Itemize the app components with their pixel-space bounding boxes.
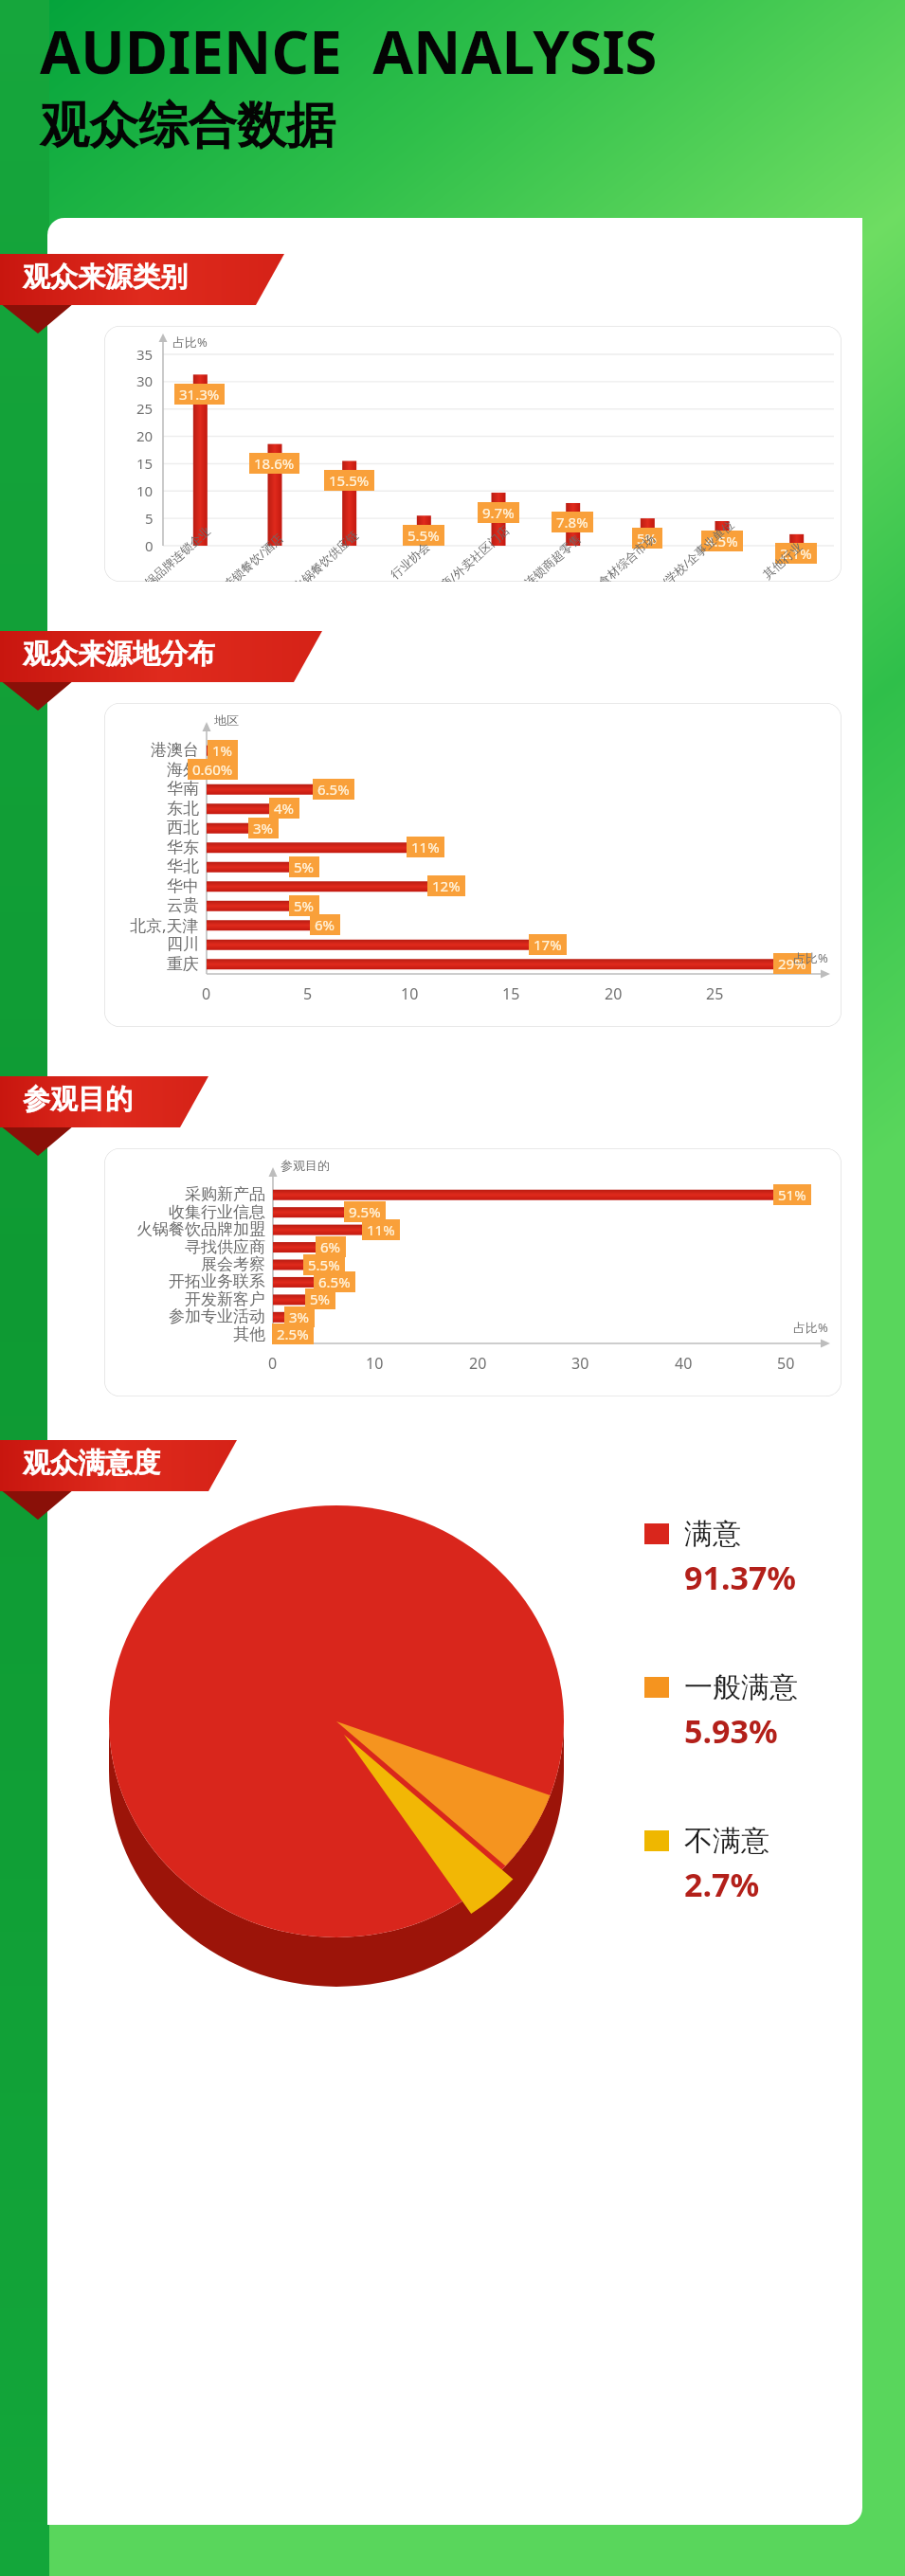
- staticText: 51%: [778, 1185, 806, 1204]
- staticText: 6.5%: [318, 1272, 351, 1291]
- staticText: 5%: [310, 1289, 331, 1308]
- button[interactable]: 0: [104, 326, 842, 582]
- staticText: 火锅品牌连锁企业: [133, 524, 214, 582]
- staticText: 17%: [534, 935, 562, 954]
- staticText: 2.7%: [684, 1863, 760, 1906]
- staticText: 20: [469, 1353, 487, 1374]
- staticText: 采购新产品: [185, 1184, 265, 1204]
- staticText: 不满意: [684, 1823, 769, 1859]
- button[interactable]: 观众来源地分布: [0, 631, 842, 690]
- staticText: 参观目的: [23, 1082, 133, 1117]
- staticText: 7.8%: [556, 513, 588, 531]
- staticText: 25: [136, 399, 154, 418]
- staticText: 占比%: [793, 1319, 828, 1336]
- staticText: AUDIENCE ANALYSIS: [40, 11, 658, 91]
- staticText: 2.5%: [277, 1324, 309, 1343]
- button[interactable]: 采购新产品: [104, 1148, 842, 1396]
- staticText: 29%: [778, 954, 806, 973]
- staticText: 3%: [253, 819, 274, 838]
- staticText: 观众来源类别: [23, 260, 188, 295]
- staticText: 0.60%: [192, 760, 233, 779]
- staticText: 东北: [167, 799, 199, 819]
- staticText: 15: [136, 454, 154, 473]
- button[interactable]: 一般满意: [644, 1669, 798, 1753]
- staticText: 6.5%: [317, 780, 350, 799]
- staticText: 2.1%: [780, 544, 812, 563]
- staticText: 观众来源地分布: [23, 637, 215, 672]
- button[interactable]: 满意: [644, 1516, 797, 1599]
- staticText: 18.6%: [254, 454, 295, 473]
- staticText: 40: [675, 1353, 693, 1374]
- staticText: 寻找供应商: [185, 1237, 265, 1257]
- button[interactable]: 参观目的: [0, 1076, 842, 1135]
- staticText: 云贵: [167, 895, 199, 915]
- staticText: 参加专业活动: [169, 1306, 265, 1326]
- staticText: 北京,天津: [130, 914, 199, 936]
- staticText: 12%: [432, 876, 461, 895]
- staticText: 收集行业信息: [169, 1202, 265, 1222]
- staticText: 6%: [315, 915, 335, 934]
- staticText: 火锅餐饮供应链: [290, 527, 362, 582]
- button[interactable]: 不满意: [644, 1823, 769, 1906]
- staticText: 4%: [274, 799, 295, 818]
- staticText: 5.5%: [308, 1255, 340, 1274]
- button[interactable]: 港澳台: [104, 703, 842, 1027]
- staticText: 0: [268, 1353, 278, 1374]
- staticText: 行业协会: [388, 539, 433, 582]
- staticText: 满意: [684, 1516, 741, 1552]
- staticText: 参观目的: [281, 1158, 330, 1173]
- staticText: 港澳台: [151, 740, 199, 760]
- staticText: 观众满意度: [23, 1446, 160, 1481]
- staticText: 5%: [294, 896, 315, 915]
- staticText: 四川: [167, 934, 199, 954]
- staticText: 开发新客户: [185, 1289, 265, 1309]
- staticText: 其他行业: [760, 539, 805, 582]
- staticText: 华北: [167, 856, 199, 876]
- staticText: 5: [303, 983, 313, 1004]
- staticText: 15.5%: [329, 471, 370, 490]
- button[interactable]: 观众来源类别: [0, 254, 842, 313]
- staticText: 11%: [367, 1220, 395, 1239]
- staticText: 5.5%: [407, 526, 440, 545]
- staticText: 连锁餐饮/酒店: [219, 530, 287, 582]
- staticText: 西北: [167, 818, 199, 838]
- staticText: 9.7%: [482, 503, 515, 522]
- staticText: 1%: [212, 741, 233, 760]
- staticText: 10: [136, 481, 154, 500]
- staticText: 食材综合市场: [595, 531, 658, 582]
- staticText: 5: [145, 509, 154, 528]
- staticText: 6%: [320, 1237, 341, 1256]
- staticText: 开拓业务联系: [169, 1271, 265, 1291]
- staticText: 30: [571, 1353, 589, 1374]
- staticText: 华东: [167, 838, 199, 857]
- staticText: 其他: [233, 1324, 265, 1344]
- staticText: 4.5%: [706, 531, 738, 550]
- staticText: 0: [202, 983, 211, 1004]
- staticText: 5.93%: [684, 1709, 778, 1753]
- staticText: 重庆: [167, 954, 199, 974]
- staticText: 20: [136, 426, 154, 445]
- staticText: 25: [706, 983, 724, 1004]
- staticText: 35: [136, 345, 154, 364]
- staticText: 海外: [167, 760, 199, 780]
- staticText: 占比%: [172, 333, 208, 351]
- staticText: 91.37%: [684, 1556, 797, 1599]
- staticText: 华中: [167, 876, 199, 896]
- staticText: 占比%: [793, 949, 828, 966]
- staticText: 华南: [167, 779, 199, 799]
- staticText: 9.5%: [349, 1202, 381, 1221]
- staticText: 10: [366, 1353, 384, 1374]
- staticText: 团餐/学校/企事业单位: [641, 517, 737, 582]
- staticText: 15: [502, 983, 520, 1004]
- staticText: 5%: [637, 529, 658, 548]
- staticText: 10: [401, 983, 419, 1004]
- staticText: 展会考察: [201, 1254, 265, 1274]
- staticText: 地区: [214, 712, 239, 728]
- staticText: 11%: [411, 838, 440, 856]
- staticText: 0: [145, 536, 154, 555]
- staticText: 5%: [294, 857, 315, 876]
- staticText: 连锁商超零售: [521, 531, 584, 582]
- button[interactable]: 观众满意度: [0, 1440, 842, 1499]
- staticText: 电商/外卖社区门店: [428, 522, 513, 582]
- staticText: 一般满意: [684, 1669, 798, 1705]
